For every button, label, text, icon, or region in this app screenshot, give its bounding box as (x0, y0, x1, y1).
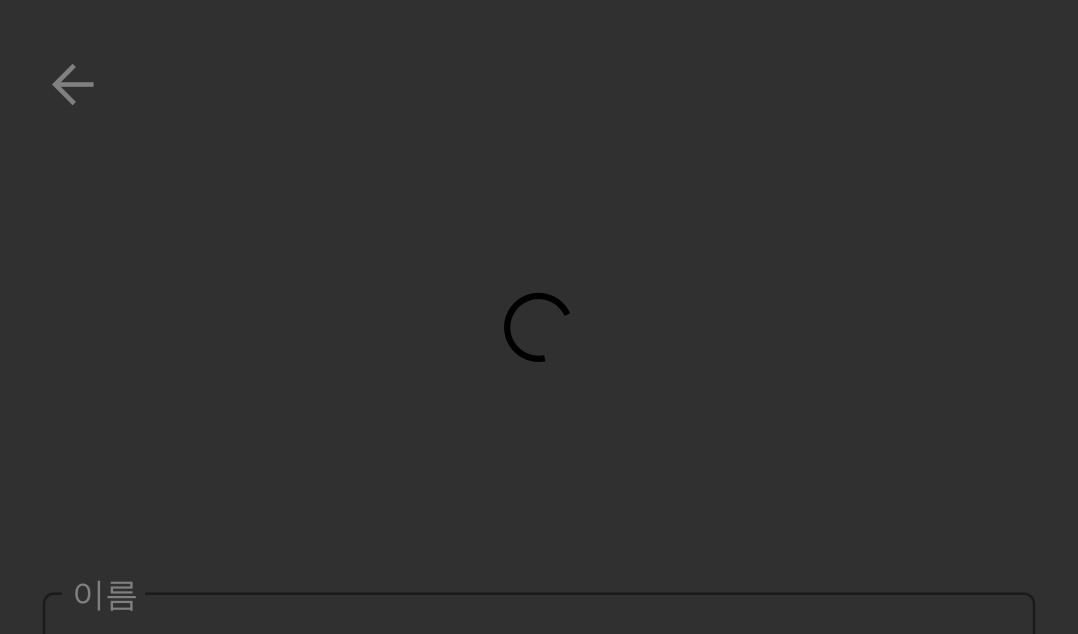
button[interactable]: Back (28, 39, 124, 135)
staticText: 이름 (72, 574, 138, 615)
